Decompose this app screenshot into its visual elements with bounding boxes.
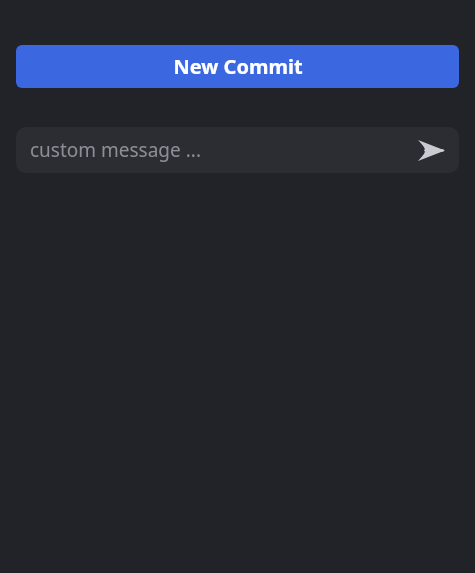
staticText: New Commit bbox=[173, 53, 303, 80]
button[interactable]: New Commit bbox=[16, 45, 459, 88]
button[interactable]: custom message ... bbox=[16, 127, 459, 173]
staticText: custom message ... bbox=[30, 137, 413, 163]
button[interactable]: Send message bbox=[413, 132, 449, 168]
